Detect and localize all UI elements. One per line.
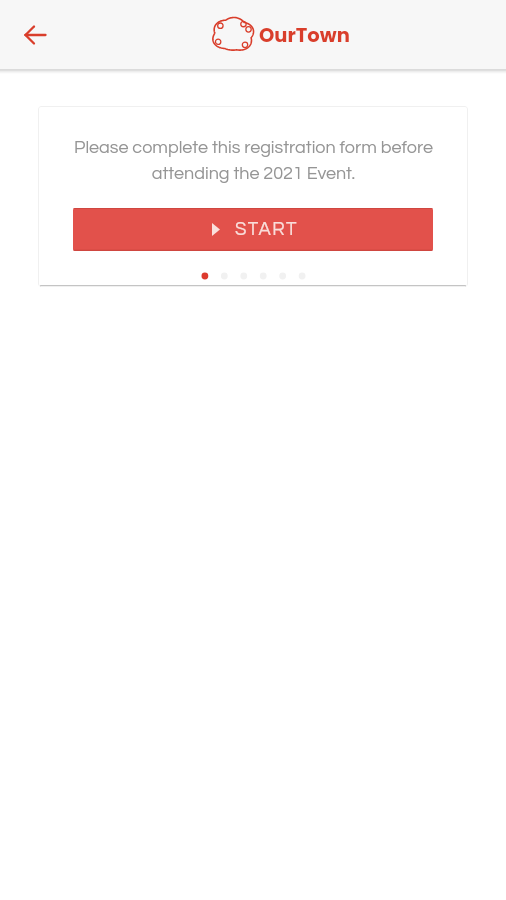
staticText: START — [235, 220, 298, 239]
button[interactable]: Back — [13, 13, 57, 57]
staticText: OurTown — [259, 22, 350, 49]
staticText: Please complete this registration form b… — [74, 138, 433, 183]
button[interactable]: START — [73, 208, 433, 251]
